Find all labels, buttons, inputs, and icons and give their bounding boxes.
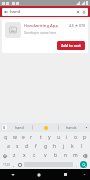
button[interactable]: Back bbox=[0, 169, 26, 180]
staticText: v bbox=[44, 152, 47, 159]
button[interactable]: g bbox=[42, 143, 49, 150]
button[interactable]: Period bbox=[74, 161, 80, 168]
staticText: c bbox=[33, 152, 36, 159]
staticText: Handwriting App bbox=[24, 23, 59, 29]
staticText: s bbox=[16, 143, 19, 150]
button[interactable]: d bbox=[23, 143, 30, 150]
button[interactable]: Clear search bbox=[76, 10, 80, 14]
staticText: z bbox=[13, 152, 16, 159]
button[interactable]: w bbox=[11, 134, 18, 141]
button[interactable]: m bbox=[72, 152, 79, 159]
staticText: d bbox=[25, 143, 29, 150]
staticText: n bbox=[64, 152, 68, 159]
button[interactable]: h bbox=[51, 143, 58, 150]
button[interactable]: Google search bbox=[2, 125, 7, 130]
button[interactable]: t bbox=[37, 134, 44, 141]
button[interactable]: Voice search bbox=[82, 10, 86, 14]
button[interactable]: n bbox=[62, 152, 69, 159]
staticText: i bbox=[66, 134, 68, 141]
staticText: hand bbox=[15, 125, 24, 130]
staticText: g bbox=[44, 143, 48, 150]
staticText: hands bbox=[66, 125, 77, 130]
staticText: 4.5 bbox=[69, 23, 74, 28]
staticText: y bbox=[48, 134, 51, 141]
button[interactable]: Recent apps bbox=[52, 169, 78, 180]
button[interactable]: More suggestions bbox=[84, 123, 89, 132]
staticText: u bbox=[57, 134, 61, 141]
button[interactable]: j bbox=[60, 143, 67, 150]
staticText: h bbox=[53, 143, 57, 150]
button[interactable]: o bbox=[72, 134, 79, 141]
staticText: hand bbox=[10, 9, 76, 15]
staticText: k bbox=[71, 143, 74, 150]
button[interactable]: Back bbox=[2, 8, 88, 16]
button[interactable]: p bbox=[81, 134, 88, 141]
button[interactable]: Search bbox=[80, 161, 87, 168]
staticText: a bbox=[7, 143, 10, 150]
staticText: m bbox=[73, 152, 78, 159]
staticText: x bbox=[23, 152, 26, 159]
button[interactable]: Emoji bbox=[17, 161, 23, 168]
button[interactable]: Home bbox=[26, 169, 52, 180]
staticText: . bbox=[76, 162, 78, 168]
button[interactable]: q bbox=[2, 134, 9, 141]
staticText: q bbox=[4, 134, 8, 141]
button[interactable]: z bbox=[11, 152, 18, 159]
button[interactable]: Backspace bbox=[82, 152, 88, 159]
staticText: b bbox=[54, 152, 58, 159]
button[interactable]: v bbox=[42, 152, 49, 159]
other: Back bbox=[4, 10, 8, 14]
staticText: l bbox=[81, 143, 83, 150]
button[interactable]: a bbox=[5, 143, 12, 150]
button[interactable]: f bbox=[32, 143, 39, 150]
button[interactable]: i bbox=[63, 134, 70, 141]
button[interactable]: b bbox=[52, 152, 59, 159]
button[interactable]: s bbox=[14, 143, 21, 150]
button[interactable]: y bbox=[46, 134, 53, 141]
staticText: , bbox=[13, 162, 15, 168]
button[interactable]: Comma bbox=[11, 161, 17, 168]
staticText: 87K bbox=[79, 23, 85, 28]
staticText: f bbox=[35, 143, 37, 150]
staticText: t bbox=[40, 134, 42, 141]
staticText: r bbox=[30, 134, 33, 141]
button[interactable]: l bbox=[78, 143, 85, 150]
button[interactable]: c bbox=[31, 152, 38, 159]
staticText: e bbox=[22, 134, 25, 141]
button[interactable]: u bbox=[55, 134, 62, 141]
button[interactable]: r bbox=[28, 134, 35, 141]
button[interactable]: ?123 bbox=[2, 161, 11, 168]
button[interactable]: Handwriting App bbox=[2, 19, 88, 53]
button[interactable]: x bbox=[21, 152, 28, 159]
button[interactable]: Hide keyboard bbox=[78, 169, 90, 180]
staticText: Add to cart bbox=[61, 43, 81, 48]
staticText: o bbox=[74, 134, 78, 141]
button[interactable]: Add to cart bbox=[57, 41, 85, 50]
staticText: ?123 bbox=[3, 163, 10, 167]
staticText: j bbox=[63, 143, 65, 150]
button[interactable]: k bbox=[69, 143, 76, 150]
button[interactable]: Shift bbox=[2, 152, 8, 159]
button[interactable]: e bbox=[20, 134, 27, 141]
staticText: Developer name here bbox=[24, 31, 57, 35]
staticText: w bbox=[13, 134, 17, 141]
staticText: p bbox=[83, 134, 87, 141]
staticText: G bbox=[3, 126, 6, 130]
